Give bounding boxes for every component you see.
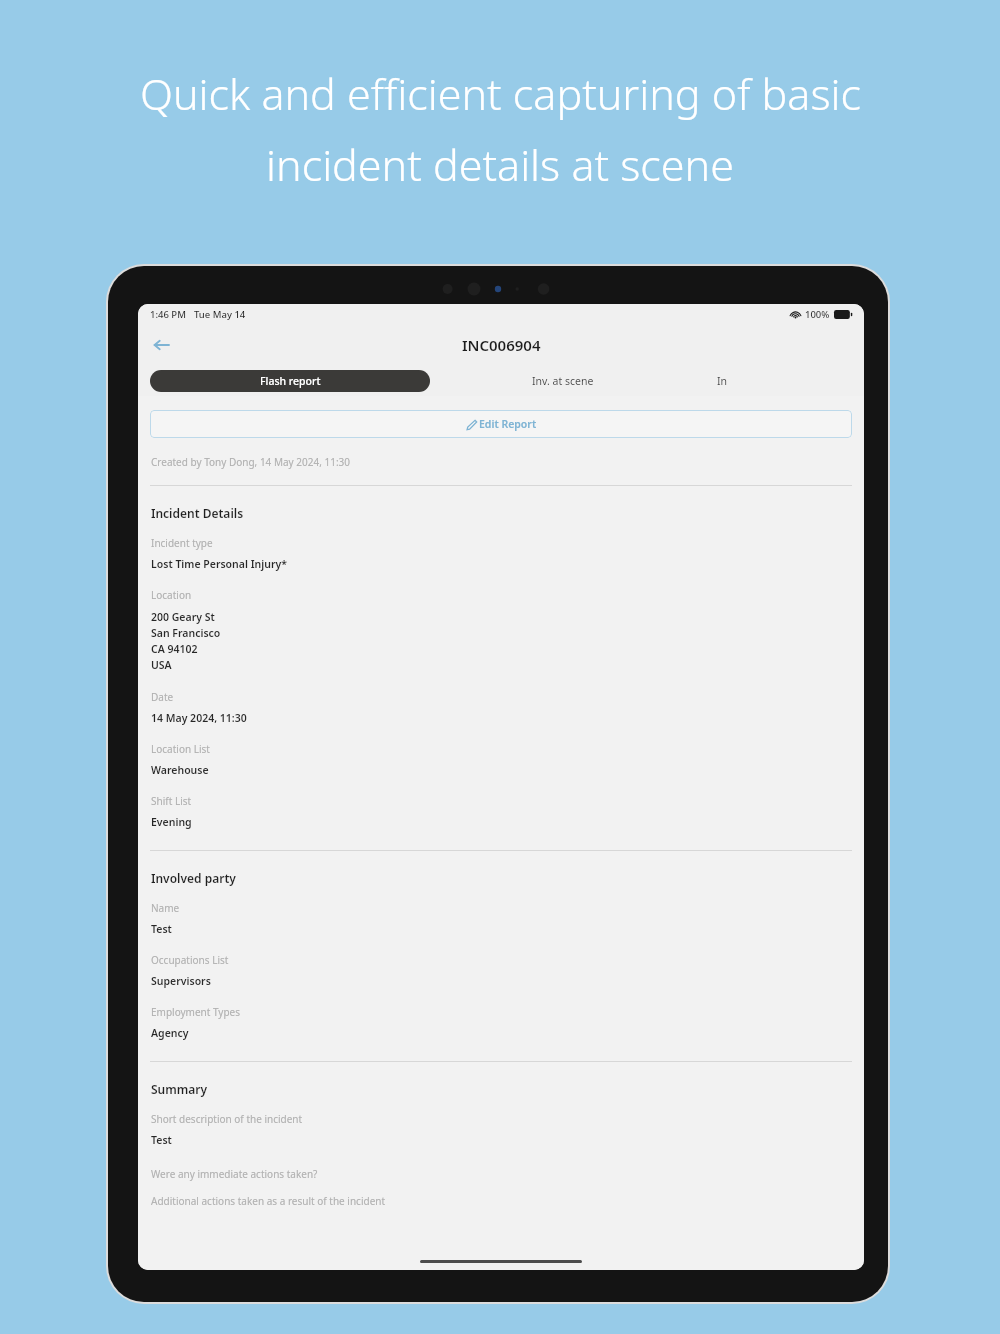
staticText: Incident Details xyxy=(151,505,244,521)
staticText: 14 May 2024, 11:30 xyxy=(151,711,247,725)
staticText: Shift List xyxy=(151,794,192,808)
staticText: Were any immediate actions taken? xyxy=(151,1167,318,1181)
staticText: INC006904 xyxy=(462,335,541,355)
staticText: Additional actions taken as a result of … xyxy=(151,1194,386,1208)
staticText: Occupations List xyxy=(151,953,229,967)
staticText: Name xyxy=(151,901,180,915)
staticText: Created by Tony Dong, 14 May 2024, 11:30 xyxy=(151,455,351,469)
staticText: 200 Geary St xyxy=(151,610,215,624)
staticText: Supervisors xyxy=(151,974,211,988)
staticText: Involved party xyxy=(151,870,236,886)
staticText: In xyxy=(717,374,728,388)
staticText: Test xyxy=(151,1133,172,1147)
button[interactable]: In xyxy=(695,366,864,396)
staticText: Flash report xyxy=(260,374,321,388)
staticText: 100% xyxy=(805,308,830,321)
button[interactable]: Inv. at scene xyxy=(430,366,695,396)
staticText: CA 94102 xyxy=(151,642,198,656)
staticText: incident details at scene xyxy=(266,135,734,194)
staticText: Test xyxy=(151,922,172,936)
staticText: Employment Types xyxy=(151,1005,241,1019)
staticText: San Francisco xyxy=(151,626,221,640)
staticText: Date xyxy=(151,690,174,704)
staticText: Location xyxy=(151,588,192,602)
staticText: Inv. at scene xyxy=(532,374,594,388)
staticText: Lost Time Personal Injury* xyxy=(151,557,287,571)
staticText: Warehouse xyxy=(151,763,209,777)
button[interactable]: Flash report xyxy=(150,370,430,392)
staticText: Summary xyxy=(151,1081,208,1097)
staticText: Incident type xyxy=(151,536,213,550)
button[interactable]: Edit Report xyxy=(150,410,852,438)
staticText: Short description of the incident xyxy=(151,1112,303,1126)
button[interactable]: Back xyxy=(144,328,178,362)
staticText: Quick and efficient capturing of basic xyxy=(140,64,861,123)
staticText: 1:46 PM xyxy=(150,308,186,321)
staticText: Edit Report xyxy=(479,417,537,431)
staticText: Agency xyxy=(151,1026,189,1040)
staticText: Tue May 14 xyxy=(194,308,246,321)
staticText: Location List xyxy=(151,742,210,756)
staticText: Evening xyxy=(151,815,192,829)
staticText: USA xyxy=(151,658,172,672)
